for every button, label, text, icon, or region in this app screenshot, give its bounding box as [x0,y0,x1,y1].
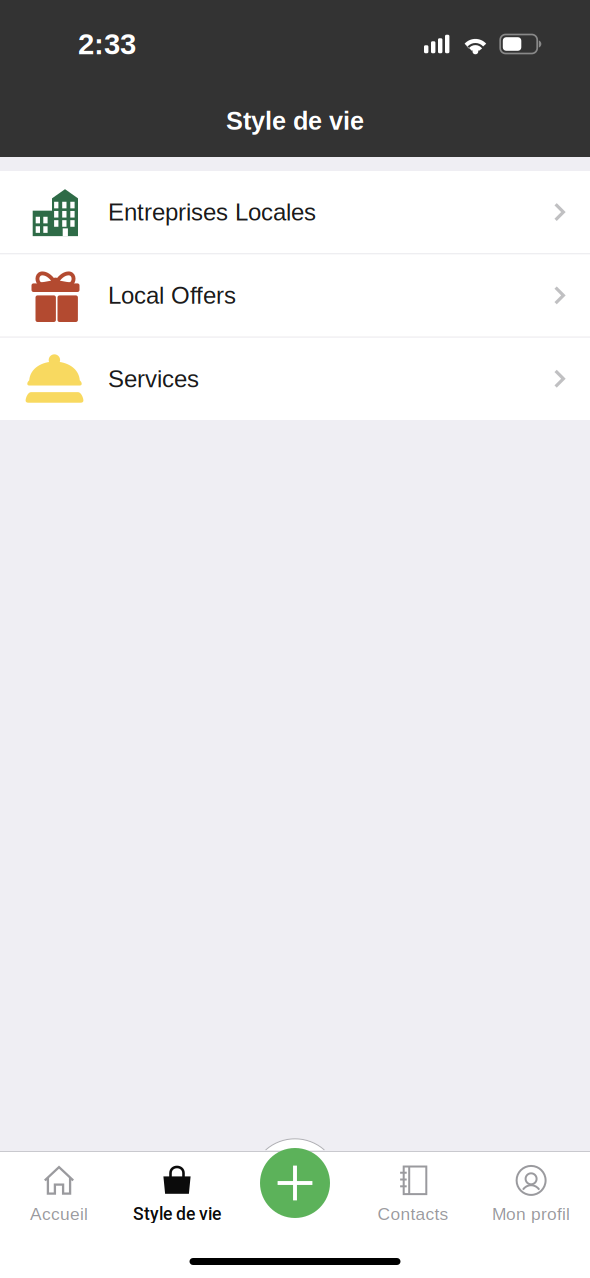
staticText: Local Offers [108,282,236,309]
staticText: Style de vie [133,1204,221,1224]
staticText: Entreprises Locales [108,199,316,226]
staticText: Contacts [377,1204,448,1224]
button[interactable]: Contacts [354,1151,472,1223]
button[interactable]: Style de vie [118,1151,236,1223]
button[interactable]: Services [0,338,590,420]
staticText: Mon profil [492,1204,570,1224]
staticText: Accueil [30,1204,88,1224]
button[interactable]: Local Offers [0,254,590,337]
button[interactable]: Entreprises Locales [0,171,590,253]
button[interactable]: Mon profil [472,1151,590,1223]
staticText: Style de vie [226,107,364,135]
button[interactable]: Accueil [0,1151,118,1223]
staticText: 2:33 [78,28,136,60]
staticText: Services [108,365,199,392]
